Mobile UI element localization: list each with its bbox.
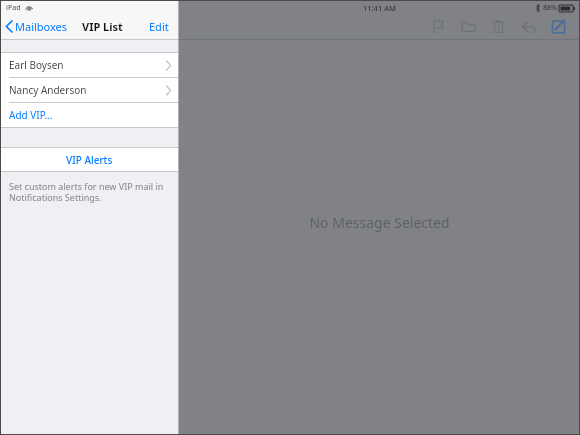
- staticText: Set custom alerts for new VIP mail in No…: [9, 180, 164, 204]
- button[interactable]: Move to folder: [453, 14, 483, 39]
- staticText: iPad: [6, 3, 21, 13]
- staticText: Edit: [149, 19, 169, 34]
- staticText: Earl Boysen: [9, 58, 64, 72]
- button[interactable]: VIP Alerts: [1, 148, 178, 171]
- button[interactable]: Nancy Anderson: [1, 78, 178, 102]
- staticText: Nancy Anderson: [9, 83, 87, 97]
- button[interactable]: Add VIP...: [1, 103, 178, 127]
- staticText: 88%: [543, 3, 557, 13]
- staticText: Mailboxes: [15, 19, 68, 34]
- staticText: VIP Alerts: [66, 153, 113, 167]
- button[interactable]: Edit: [140, 14, 178, 39]
- button[interactable]: Mailboxes: [1, 14, 74, 39]
- button[interactable]: Earl Boysen: [1, 53, 178, 77]
- staticText: 11:41 AM: [363, 3, 396, 13]
- button[interactable]: Reply: [513, 14, 543, 39]
- button[interactable]: Delete: [483, 14, 513, 39]
- button[interactable]: Compose: [543, 14, 573, 39]
- staticText: Add VIP...: [9, 108, 53, 122]
- staticText: VIP List: [82, 19, 123, 34]
- button[interactable]: Flag: [423, 14, 453, 39]
- staticText: No Message Selected: [309, 213, 450, 232]
